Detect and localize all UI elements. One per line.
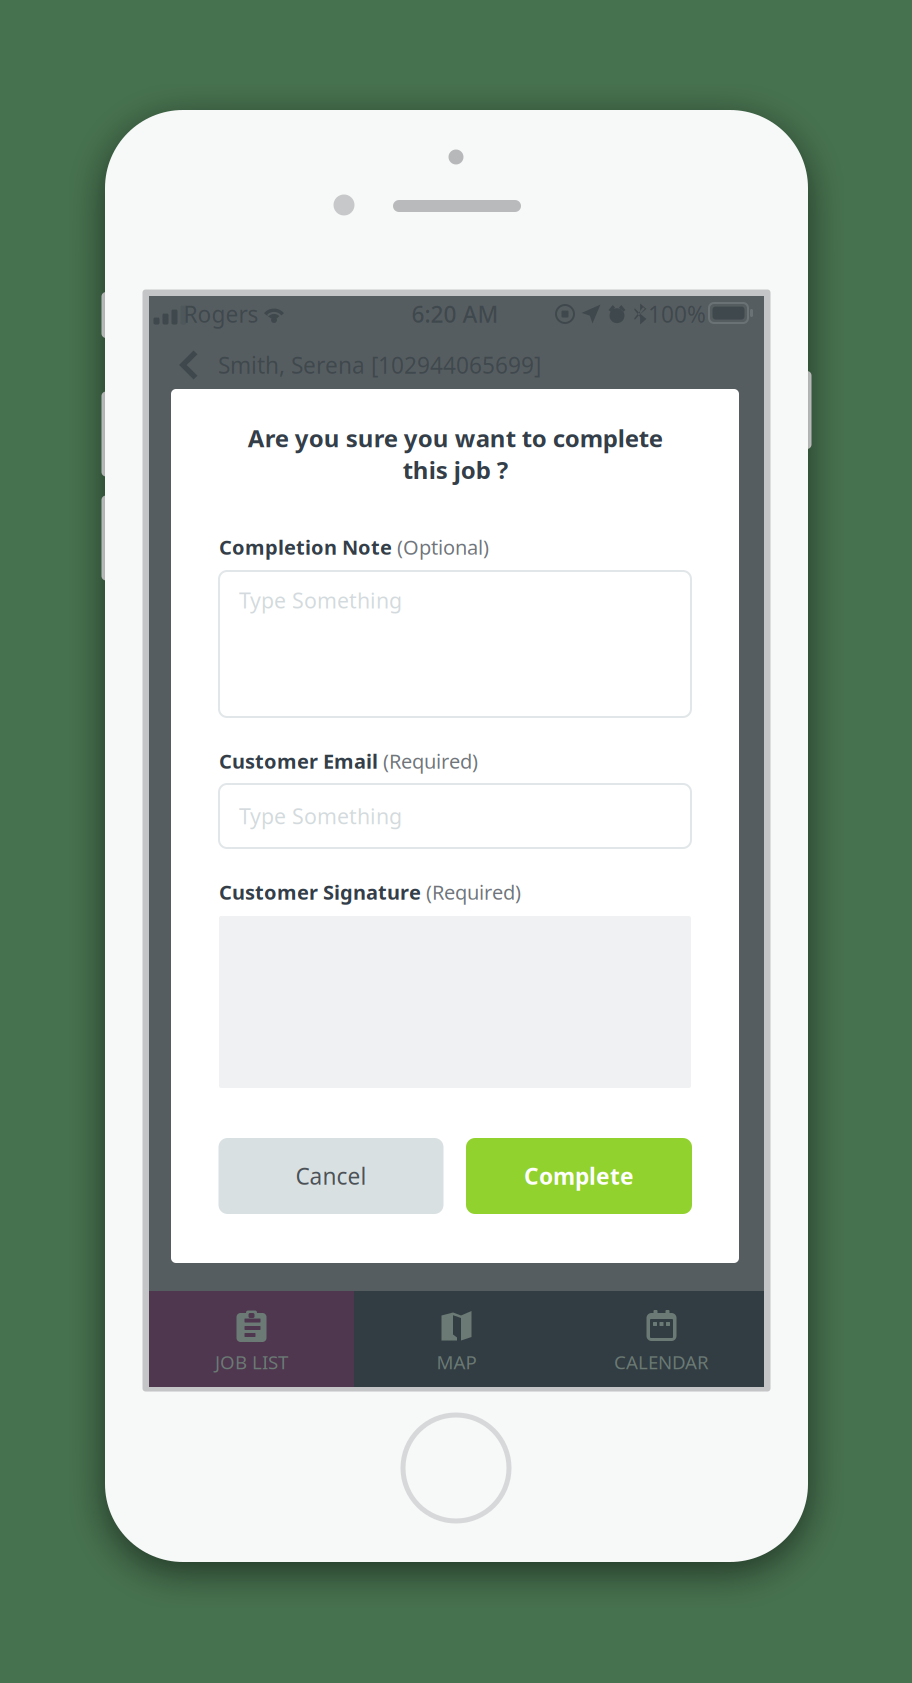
staticText: Rogers [183, 299, 258, 329]
button[interactable]: Back [149, 336, 218, 394]
button[interactable]: CALENDAR [559, 1291, 764, 1387]
staticText: CALENDAR [614, 1350, 709, 1374]
staticText: Completion Note [219, 534, 392, 560]
staticText: Smith, Serena [102944065699] [218, 350, 541, 380]
staticText: MAP [436, 1350, 476, 1374]
staticText: Complete [524, 1161, 634, 1191]
button[interactable]: MAP [354, 1291, 559, 1387]
staticText: Type Something [239, 586, 402, 614]
staticText: (Optional) [392, 534, 489, 560]
staticText: Customer Signature [219, 879, 421, 905]
staticText: Are you sure you want to complete this j… [247, 422, 662, 486]
staticText: 6:20 AM [411, 299, 498, 329]
staticText: (Required) [378, 748, 478, 774]
staticText: Cancel [295, 1161, 366, 1191]
button[interactable]: Type Something [219, 784, 691, 848]
button[interactable]: Cancel [218, 1138, 443, 1214]
staticText: Customer Email [219, 748, 378, 774]
staticText: JOB LIST [215, 1350, 288, 1374]
button[interactable]: Type Something [219, 571, 691, 717]
staticText: 100% [648, 299, 706, 329]
staticText: Type Something [239, 802, 402, 830]
staticText: (Required) [421, 879, 521, 905]
button[interactable]: Complete [466, 1138, 692, 1214]
button[interactable]: JOB LIST [149, 1291, 354, 1387]
